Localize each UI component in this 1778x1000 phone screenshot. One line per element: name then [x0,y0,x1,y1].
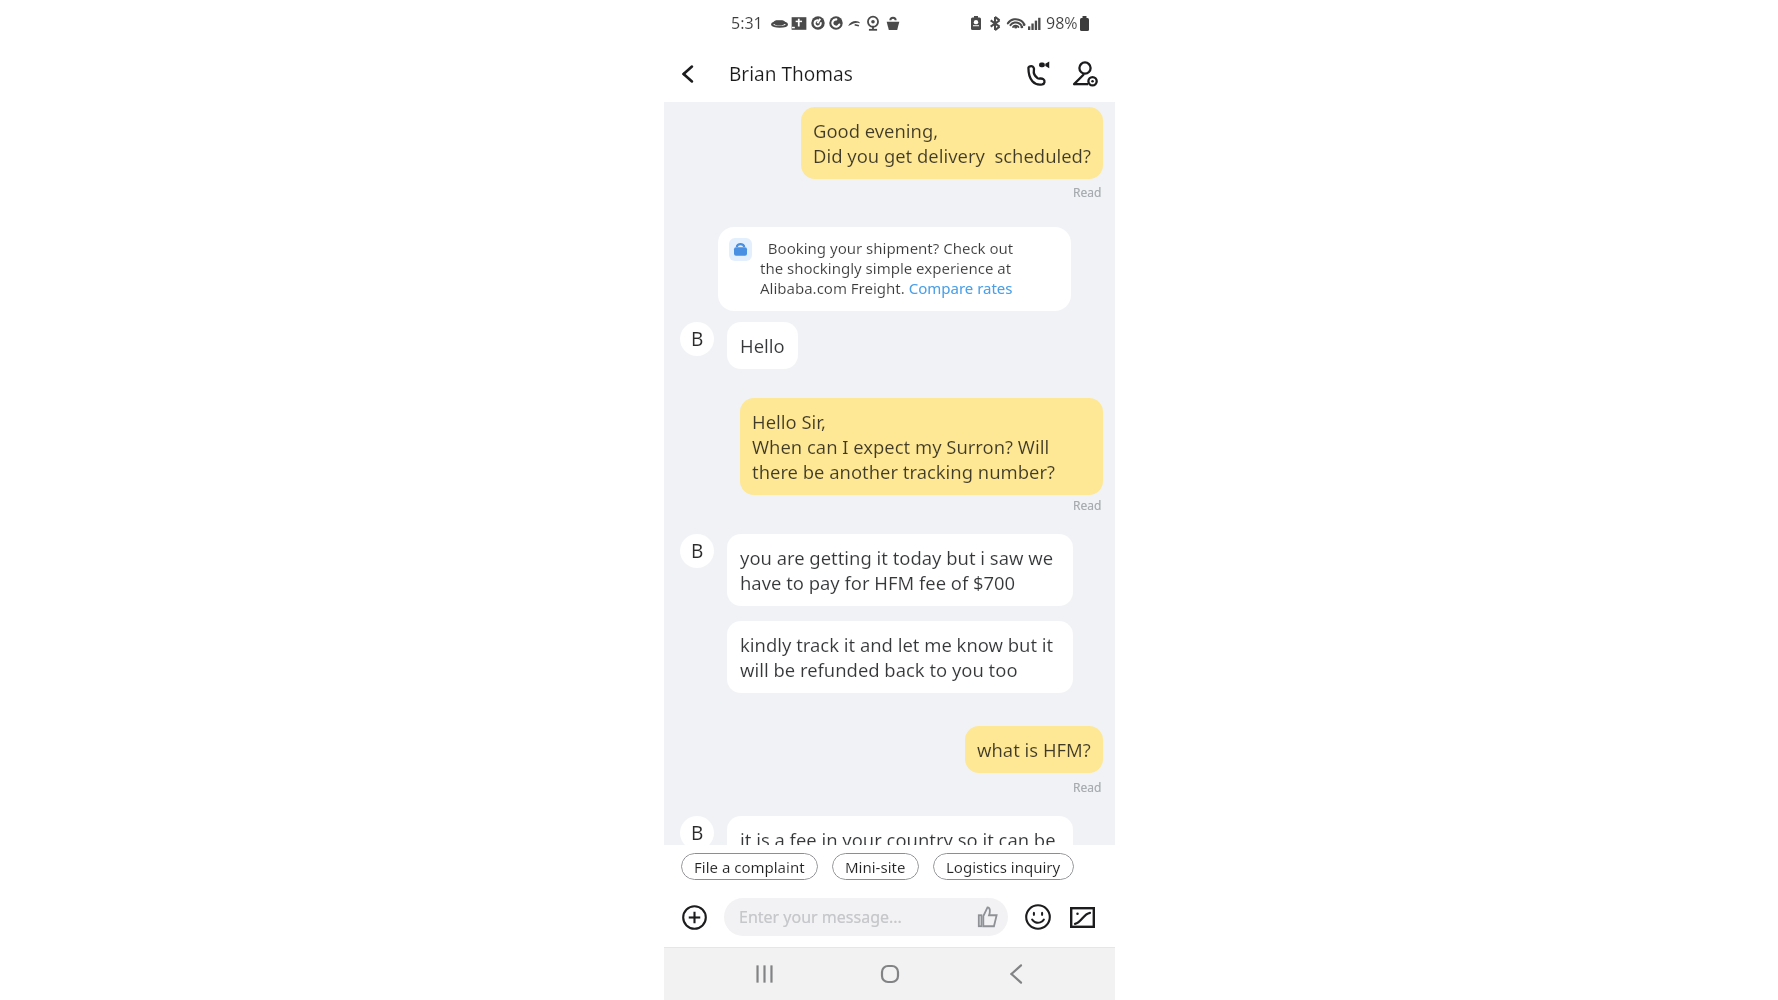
staticText: Hello Sir, [752,409,826,434]
button[interactable]: File a complaint [681,853,818,880]
staticText: 98% [1046,12,1078,34]
staticText: Read [1073,184,1102,200]
staticText: Read [1073,497,1102,513]
button[interactable]: it is a fee in your country so it can be [727,816,1073,845]
button[interactable]: Stickers [1066,901,1098,933]
staticText: 5:31 [731,12,763,34]
staticText: Good evening, [813,118,939,143]
staticText: Enter your message... [739,906,902,928]
staticText: Logistics inquiry [946,857,1061,877]
button[interactable]: Hello Sir, [740,398,1103,495]
staticText: have to pay for HFM fee of $700 [740,570,1016,595]
staticText: B [691,326,704,352]
button[interactable]: Enter your message... [724,898,1008,936]
button[interactable]: Recents [740,950,788,998]
button[interactable]: Emoji [1022,901,1054,933]
button[interactable]: Home [866,950,914,998]
staticText: what is HFM? [977,737,1091,762]
button[interactable]: kindly track it and let me know but it [727,621,1073,693]
staticText: Booking your shipment? Check out the sho… [760,238,1014,298]
staticText: File a complaint [694,857,805,877]
staticText: Hello [740,333,785,358]
button[interactable]: Add attachment [678,901,710,933]
staticText: When can I expect my Surron? Will [752,434,1050,459]
staticText: Brian Thomas [729,61,853,87]
staticText: it is a fee in your country so it can be [740,827,1056,845]
button[interactable]: Back [669,55,707,93]
button[interactable]: Mini-site [832,853,919,880]
staticText: B [691,820,704,845]
staticText: will be refunded back to you too [740,657,1018,682]
button[interactable]: you are getting it today but i saw we [727,534,1073,606]
button[interactable]: Back [992,950,1040,998]
staticText: there be another tracking number? [752,459,1056,484]
staticText: kindly track it and let me know but it [740,632,1054,657]
button[interactable]: Logistics inquiry [933,853,1074,880]
button[interactable]: Booking your shipment? Check out the sho… [718,227,1071,311]
staticText: B [691,538,704,564]
staticText: Mini-site [845,857,906,877]
staticText: Did you get delivery scheduled? [813,143,1091,168]
button[interactable]: Hello [727,322,798,369]
staticText: Read [1073,779,1102,795]
staticText: you are getting it today but i saw we [740,545,1054,570]
button[interactable]: Video call [1016,53,1058,95]
button[interactable]: Contact details [1064,53,1106,95]
button[interactable]: what is HFM? [965,726,1103,773]
button[interactable]: Good evening, [801,107,1103,179]
